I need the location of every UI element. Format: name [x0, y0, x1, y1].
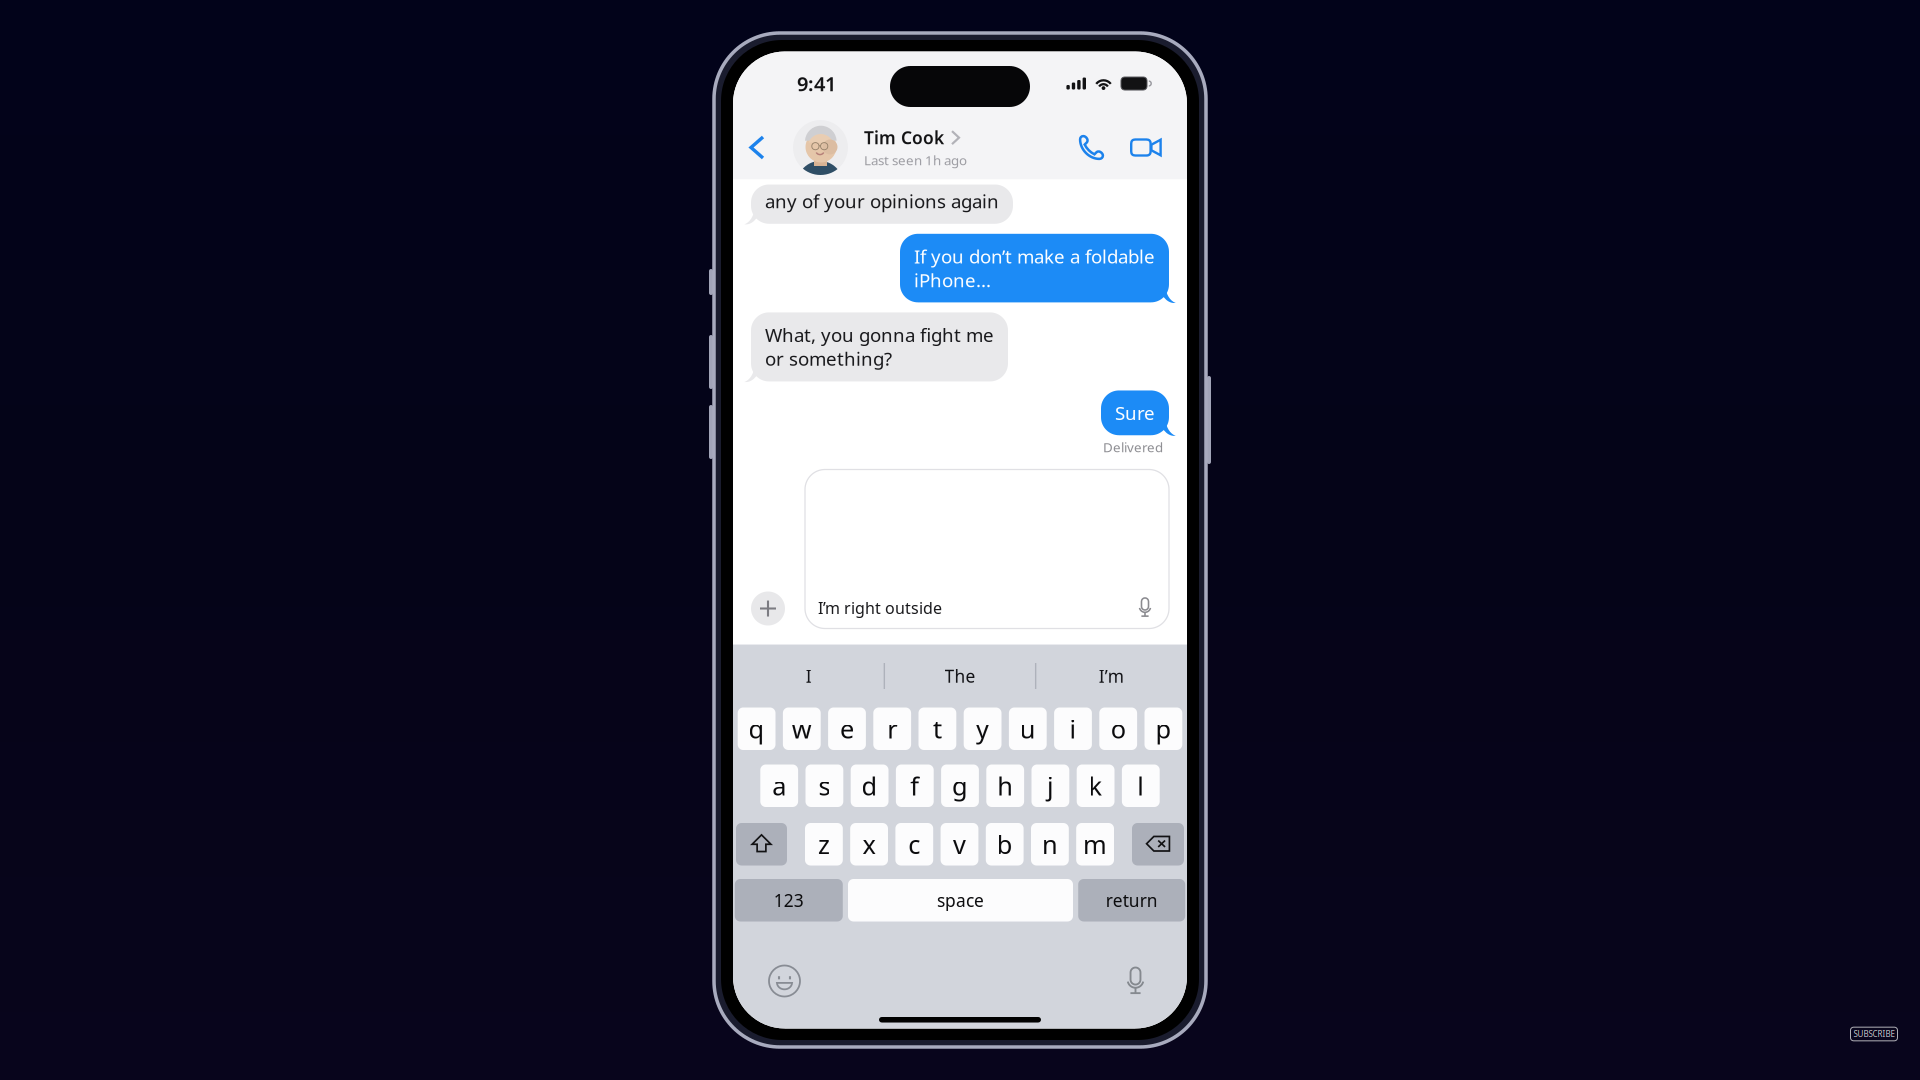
button[interactable]: Audio call: [1067, 125, 1116, 170]
button[interactable]: If you don’t make a foldable: [900, 234, 1169, 302]
button[interactable]: b: [986, 823, 1024, 865]
button[interactable]: I: [733, 650, 884, 702]
staticText: f: [910, 769, 919, 802]
staticText: return: [1106, 889, 1158, 912]
staticText: l: [1137, 769, 1144, 802]
button[interactable]: What, you gonna fight me: [751, 312, 1008, 381]
button[interactable]: x: [850, 823, 888, 865]
staticText: or something?: [765, 346, 892, 371]
button[interactable]: y: [964, 707, 1001, 750]
staticText: y: [976, 712, 989, 745]
button[interactable]: w: [783, 707, 821, 750]
staticText: u: [1020, 712, 1036, 745]
staticText: n: [1042, 827, 1058, 861]
button[interactable]: c: [895, 823, 933, 865]
staticText: c: [908, 827, 920, 861]
button[interactable]: t: [918, 707, 956, 750]
staticText: h: [997, 769, 1013, 802]
staticText: s: [818, 769, 830, 802]
staticText: w: [792, 712, 812, 745]
button[interactable]: e: [828, 707, 866, 750]
staticText: v: [953, 827, 966, 861]
staticText: 123: [774, 889, 804, 912]
staticText: t: [933, 712, 942, 745]
staticText: Delivered: [1103, 438, 1163, 456]
staticText: z: [818, 827, 830, 861]
button[interactable]: g: [941, 764, 979, 807]
staticText: space: [937, 889, 984, 912]
button[interactable]: u: [1009, 707, 1047, 750]
staticText: Tim Cook: [864, 126, 944, 149]
staticText: a: [772, 769, 786, 802]
button[interactable]: f: [896, 764, 934, 807]
button[interactable]: i: [1054, 707, 1092, 750]
staticText: g: [952, 769, 968, 802]
button[interactable]: h: [986, 764, 1024, 807]
button[interactable]: o: [1099, 707, 1137, 750]
button[interactable]: Tim Cook: [793, 120, 967, 175]
button[interactable]: I’m: [1036, 650, 1187, 702]
staticText: If you don’t make a foldable: [914, 244, 1155, 269]
staticText: d: [862, 769, 878, 802]
button[interactable]: FaceTime video call: [1116, 123, 1181, 171]
staticText: m: [1083, 827, 1107, 861]
staticText: o: [1111, 712, 1126, 745]
button[interactable]: any of your opinions again: [751, 184, 1013, 224]
button[interactable]: Back: [739, 124, 793, 171]
staticText: Sure: [1115, 400, 1155, 425]
staticText: q: [749, 712, 765, 745]
button[interactable]: d: [851, 764, 888, 807]
button[interactable]: m: [1076, 823, 1114, 865]
staticText: p: [1155, 712, 1171, 745]
staticText: Last seen 1h ago: [864, 151, 967, 169]
button[interactable]: s: [805, 764, 843, 807]
button[interactable]: a: [760, 764, 798, 807]
staticText: I’m: [1099, 664, 1124, 687]
staticText: any of your opinions again: [765, 188, 999, 213]
staticText: r: [887, 712, 897, 745]
staticText: The: [944, 664, 975, 687]
button[interactable]: return: [1078, 879, 1185, 921]
button[interactable]: z: [805, 823, 843, 865]
button[interactable]: k: [1077, 764, 1114, 807]
staticText: x: [863, 827, 876, 861]
staticText: What, you gonna fight me: [765, 322, 994, 347]
staticText: 9:41: [797, 70, 836, 97]
button[interactable]: I’m right outside: [805, 469, 1169, 628]
button[interactable]: l: [1122, 764, 1160, 807]
button[interactable]: space: [848, 879, 1073, 921]
button[interactable]: p: [1144, 707, 1182, 750]
button[interactable]: Delete: [1132, 823, 1184, 865]
staticText: b: [997, 827, 1013, 861]
button[interactable]: v: [941, 823, 978, 865]
staticText: I’m right outside: [818, 597, 942, 618]
button[interactable]: Add attachment: [751, 591, 785, 628]
staticText: SUBSCRIBE: [1853, 1029, 1894, 1039]
staticText: e: [840, 712, 854, 745]
button[interactable]: j: [1031, 764, 1069, 807]
button[interactable]: Dictation: [1112, 957, 1159, 1004]
staticText: I: [806, 664, 812, 687]
staticText: j: [1047, 769, 1054, 802]
button[interactable]: The: [884, 650, 1036, 702]
button[interactable]: Emoji keyboard: [761, 957, 808, 1004]
staticText: k: [1089, 769, 1103, 802]
staticText: i: [1069, 712, 1076, 745]
button[interactable]: q: [738, 707, 775, 750]
staticText: iPhone...: [914, 268, 991, 292]
button[interactable]: r: [873, 707, 911, 750]
button[interactable]: Shift: [736, 823, 787, 865]
button[interactable]: Sure: [1101, 390, 1169, 435]
button[interactable]: n: [1031, 823, 1069, 865]
button[interactable]: 123: [735, 879, 843, 921]
